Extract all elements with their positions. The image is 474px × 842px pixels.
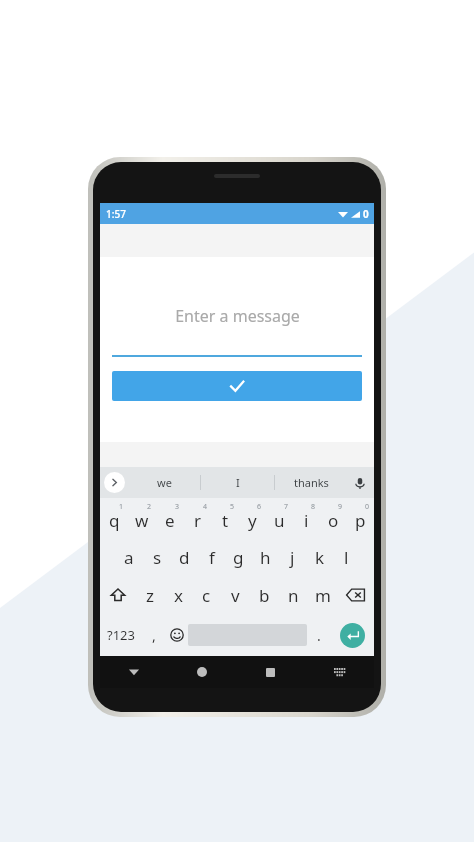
staticText: u bbox=[274, 509, 285, 532]
staticText: 1 bbox=[119, 502, 124, 512]
staticText: a bbox=[124, 546, 134, 569]
button[interactable]: More suggestions bbox=[104, 472, 125, 493]
staticText: k bbox=[315, 546, 325, 569]
button[interactable]: thanks bbox=[275, 467, 348, 498]
staticText: r bbox=[194, 509, 202, 532]
staticText: . bbox=[317, 626, 321, 645]
staticText: z bbox=[146, 584, 154, 607]
staticText: thanks bbox=[294, 475, 329, 490]
button[interactable]: Enter bbox=[330, 614, 374, 656]
button[interactable]: Switch keyboard bbox=[305, 656, 374, 688]
staticText: x bbox=[174, 584, 183, 607]
staticText: t bbox=[222, 509, 229, 532]
button[interactable]: 0 bbox=[347, 498, 374, 538]
staticText: o bbox=[328, 509, 339, 532]
button[interactable]: x bbox=[164, 576, 192, 614]
staticText: v bbox=[231, 584, 240, 607]
staticText: we bbox=[157, 475, 172, 490]
button[interactable]: Home bbox=[168, 656, 236, 688]
staticText: m bbox=[315, 584, 331, 607]
button[interactable]: , bbox=[142, 614, 165, 656]
staticText: 2 bbox=[147, 502, 152, 512]
staticText: I bbox=[236, 475, 240, 490]
staticText: 1:57 bbox=[106, 207, 126, 221]
button[interactable]: Back bbox=[100, 656, 168, 688]
staticText: 6 bbox=[257, 502, 262, 512]
button[interactable]: 1 bbox=[100, 498, 128, 538]
button[interactable]: l bbox=[333, 538, 360, 576]
button[interactable]: a bbox=[115, 538, 143, 576]
staticText: c bbox=[202, 584, 211, 607]
staticText: 3 bbox=[175, 502, 180, 512]
staticText: 8 bbox=[311, 502, 316, 512]
staticText: g bbox=[233, 546, 244, 569]
staticText: e bbox=[165, 509, 175, 532]
button[interactable]: 8 bbox=[293, 498, 320, 538]
staticText: 5 bbox=[230, 502, 235, 512]
button[interactable]: g bbox=[225, 538, 252, 576]
button[interactable]: ?123 bbox=[100, 614, 142, 656]
staticText: j bbox=[290, 546, 295, 569]
button[interactable]: h bbox=[252, 538, 279, 576]
button[interactable]: d bbox=[171, 538, 198, 576]
button[interactable]: m bbox=[308, 576, 337, 614]
button[interactable]: Recents bbox=[236, 656, 305, 688]
button[interactable]: c bbox=[192, 576, 221, 614]
staticText: , bbox=[152, 626, 156, 645]
staticText: n bbox=[288, 584, 299, 607]
staticText: h bbox=[260, 546, 271, 569]
staticText: 0 bbox=[363, 207, 369, 221]
button[interactable]: 4 bbox=[184, 498, 212, 538]
button[interactable]: v bbox=[221, 576, 250, 614]
button[interactable]: Backspace bbox=[337, 576, 374, 614]
staticText: b bbox=[259, 584, 270, 607]
button[interactable]: we bbox=[128, 467, 200, 498]
button[interactable]: 7 bbox=[266, 498, 293, 538]
staticText: y bbox=[248, 509, 257, 532]
button[interactable]: k bbox=[306, 538, 333, 576]
staticText: 0 bbox=[365, 502, 370, 512]
button[interactable]: n bbox=[279, 576, 308, 614]
button[interactable]: 9 bbox=[320, 498, 347, 538]
staticText: 4 bbox=[203, 502, 208, 512]
other: Send message bbox=[227, 376, 247, 396]
button[interactable]: Shift bbox=[100, 576, 136, 614]
button[interactable]: Emoji bbox=[165, 614, 188, 656]
staticText: ?123 bbox=[107, 626, 135, 644]
staticText: 9 bbox=[338, 502, 343, 512]
staticText: i bbox=[304, 509, 309, 532]
button[interactable]: z bbox=[136, 576, 164, 614]
button[interactable]: j bbox=[279, 538, 306, 576]
staticText: 7 bbox=[284, 502, 289, 512]
button[interactable]: 3 bbox=[156, 498, 184, 538]
button[interactable]: 6 bbox=[239, 498, 266, 538]
staticText: d bbox=[179, 546, 190, 569]
button[interactable]: Voice input bbox=[352, 475, 368, 491]
staticText: l bbox=[344, 546, 349, 569]
button[interactable]: Send message bbox=[112, 371, 362, 401]
button[interactable]: 5 bbox=[212, 498, 239, 538]
button[interactable]: f bbox=[198, 538, 225, 576]
button[interactable]: 2 bbox=[128, 498, 156, 538]
button[interactable]: s bbox=[143, 538, 171, 576]
button[interactable]: I bbox=[201, 467, 274, 498]
staticText: s bbox=[153, 546, 162, 569]
button[interactable]: . bbox=[307, 614, 330, 656]
staticText: Enter a message bbox=[175, 305, 300, 327]
staticText: f bbox=[209, 546, 215, 569]
button[interactable]: b bbox=[250, 576, 279, 614]
staticText: q bbox=[109, 509, 120, 532]
staticText: w bbox=[135, 509, 149, 532]
staticText: p bbox=[355, 509, 366, 532]
